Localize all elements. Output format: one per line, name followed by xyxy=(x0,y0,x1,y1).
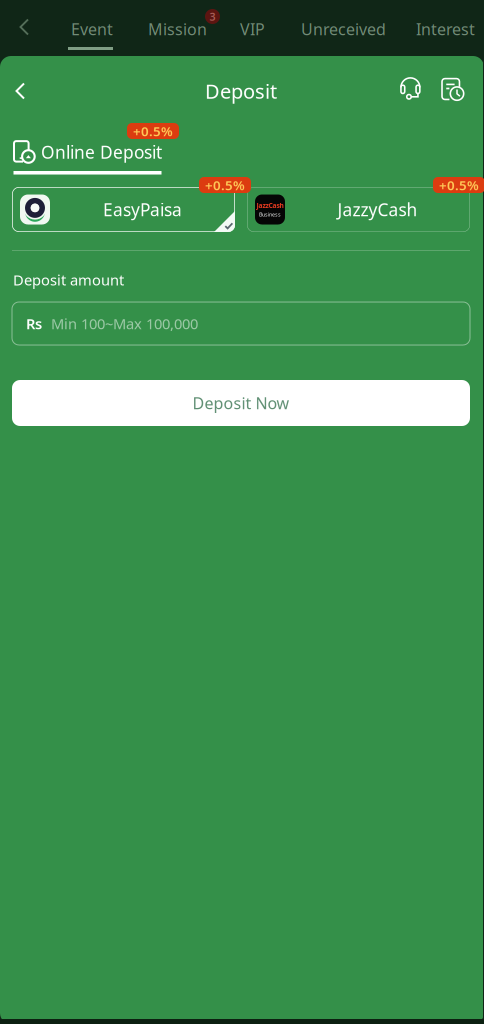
button[interactable]: Transaction history xyxy=(440,76,466,102)
staticText: Deposit amount xyxy=(13,270,124,289)
staticText: Unreceived xyxy=(301,18,386,40)
staticText: Deposit Now xyxy=(192,392,289,414)
staticText: Event xyxy=(71,18,113,40)
staticText: Rs xyxy=(26,314,42,333)
button[interactable]: Back xyxy=(0,68,43,114)
button[interactable]: Online Deposit xyxy=(13,141,162,174)
staticText: +0.5% xyxy=(439,176,479,194)
staticText: 3 xyxy=(209,9,215,24)
staticText: +0.5% xyxy=(205,176,245,194)
staticText: EasyPaisa xyxy=(103,198,182,221)
button[interactable]: JazzCash xyxy=(247,187,470,232)
staticText: Business xyxy=(259,211,281,218)
staticText: JazzCash xyxy=(256,201,283,210)
staticText: Min 100~Max 100,000 xyxy=(51,314,198,333)
staticText: VIP xyxy=(240,18,265,40)
button[interactable]: Deposit Now xyxy=(12,380,470,426)
staticText: Mission xyxy=(148,18,207,40)
button[interactable]: Customer service xyxy=(398,76,423,102)
staticText: Online Deposit xyxy=(41,140,162,163)
button[interactable]: EasyPaisa xyxy=(12,187,235,232)
staticText: Deposit xyxy=(205,78,277,104)
staticText: JazzyCash xyxy=(337,198,417,221)
staticText: +0.5% xyxy=(133,122,173,140)
staticText: Interest xyxy=(416,18,475,40)
